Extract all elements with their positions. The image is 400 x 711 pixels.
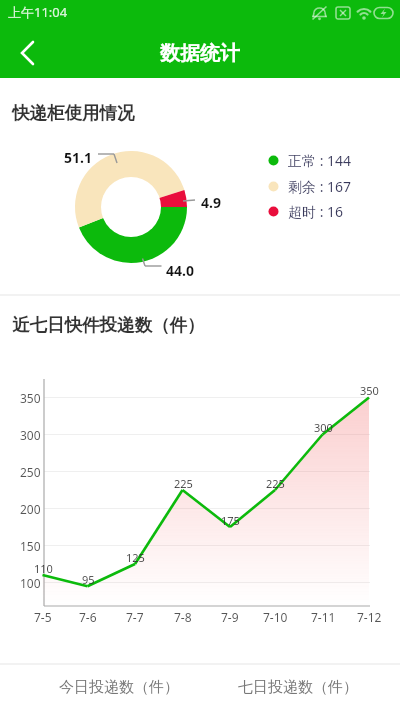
staticText: 数据统计 [160, 41, 240, 66]
button[interactable]: 正常 : 144 [268, 151, 352, 170]
staticText: 7-9 [221, 609, 239, 625]
staticText: 95 [82, 572, 95, 586]
button[interactable]: 七日投递数（件） [231, 665, 365, 709]
staticText: 110 [34, 561, 53, 575]
staticText: 剩余 : 167 [288, 177, 352, 196]
button[interactable] [10, 36, 44, 70]
staticText: 100 [20, 575, 41, 591]
staticText: 44.0 [166, 261, 194, 280]
button[interactable]: 剩余 : 167 [268, 177, 352, 196]
staticText: 7-8 [174, 609, 192, 625]
staticText: 7-10 [263, 609, 288, 625]
button[interactable]: 超时 : 16 [268, 202, 344, 221]
staticText: 225 [266, 476, 285, 490]
staticText: 上午11:04 [8, 3, 68, 21]
staticText: 七日投递数（件） [238, 678, 358, 697]
staticText: 125 [126, 550, 145, 564]
staticText: 快递柜使用情况 [12, 102, 135, 124]
staticText: 今日投递数（件） [59, 678, 179, 697]
staticText: 7-6 [79, 609, 97, 625]
staticText: 350 [360, 383, 379, 397]
staticText: 200 [20, 501, 41, 517]
staticText: 4.9 [201, 193, 221, 212]
staticText: 300 [20, 427, 41, 443]
staticText: 300 [314, 420, 333, 434]
staticText: 7-7 [126, 609, 144, 625]
staticText: 正常 : 144 [288, 151, 352, 170]
staticText: 150 [20, 538, 41, 554]
staticText: 225 [174, 476, 193, 490]
staticText: 350 [20, 390, 41, 406]
staticText: 175 [221, 513, 240, 527]
staticText: 7-11 [311, 609, 336, 625]
staticText: 超时 : 16 [288, 202, 344, 221]
button[interactable]: 今日投递数（件） [51, 665, 186, 709]
staticText: 7-5 [34, 609, 52, 625]
staticText: 51.1 [64, 148, 92, 167]
staticText: 7-12 [357, 609, 382, 625]
staticText: 近七日快件投递数（件） [12, 314, 205, 336]
staticText: 250 [20, 464, 41, 480]
